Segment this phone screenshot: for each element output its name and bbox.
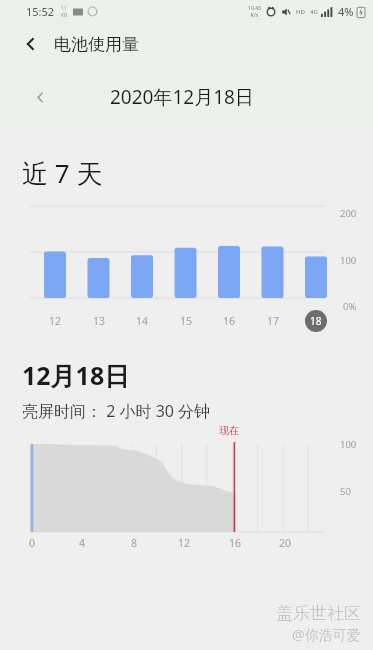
button[interactable]: 13	[88, 310, 110, 332]
staticText: 电池使用量	[54, 34, 139, 55]
button[interactable]: Previous day	[24, 81, 56, 113]
staticText: 现在	[219, 424, 239, 437]
staticText: 2020年12月18日	[110, 84, 254, 110]
staticText: 11 KB	[61, 5, 68, 19]
staticText: 15	[180, 314, 193, 328]
staticText: 18	[310, 314, 322, 328]
staticText: 0%	[343, 300, 357, 313]
staticText: 4G	[310, 8, 318, 16]
button[interactable]: 15	[175, 310, 197, 332]
staticText: 15:52	[26, 4, 55, 19]
staticText: 13	[93, 314, 106, 328]
button[interactable]: 12	[44, 310, 66, 332]
staticText: 100	[340, 438, 357, 451]
staticText: 20	[278, 536, 292, 550]
button[interactable]: 17	[262, 310, 284, 332]
staticText: 4%	[338, 4, 354, 19]
staticText: 16	[228, 536, 242, 550]
staticText: 14	[136, 314, 149, 328]
staticText: 100	[340, 254, 357, 267]
button[interactable]: Back	[14, 27, 48, 61]
staticText: 16	[223, 314, 236, 328]
button[interactable]: 14	[131, 310, 153, 332]
staticText: 12	[49, 314, 62, 328]
staticText: 17	[267, 314, 280, 328]
button[interactable]: 16	[218, 310, 240, 332]
staticText: 盖乐世社区	[276, 603, 361, 624]
staticText: 8	[127, 536, 141, 550]
staticText: 10.43 K/s	[248, 5, 261, 19]
staticText: 12月18日	[22, 358, 130, 392]
staticText: HD	[296, 8, 305, 16]
staticText: @你浩可爱	[292, 625, 361, 644]
staticText: 亮屏时间： 2 小时 30 分钟	[22, 400, 211, 422]
staticText: 200	[340, 207, 357, 220]
button[interactable]: 18	[305, 310, 327, 332]
staticText: 50	[340, 485, 351, 498]
staticText: 4	[75, 536, 89, 550]
staticText: 0	[25, 536, 39, 550]
button[interactable]: 近 7 天	[0, 142, 373, 204]
staticText: 12	[177, 536, 191, 550]
staticText: 近 7 天	[22, 155, 103, 191]
